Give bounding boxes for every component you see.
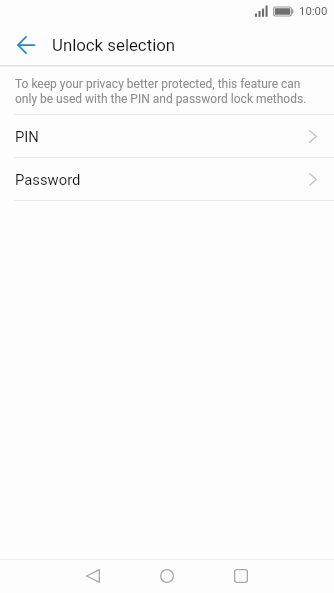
staticText: PIN: [15, 128, 309, 145]
staticText: 10:00: [299, 4, 328, 17]
staticText: Unlock selection: [52, 35, 176, 55]
button[interactable]: Back: [70, 559, 115, 593]
staticText: Password: [15, 171, 309, 188]
button[interactable]: Recent apps: [218, 559, 263, 593]
staticText: To keep your privacy better protected, t…: [15, 77, 307, 106]
button[interactable]: PIN: [0, 115, 334, 157]
button[interactable]: Password: [0, 158, 334, 200]
button[interactable]: Back: [9, 28, 43, 62]
button[interactable]: Home: [144, 559, 189, 593]
